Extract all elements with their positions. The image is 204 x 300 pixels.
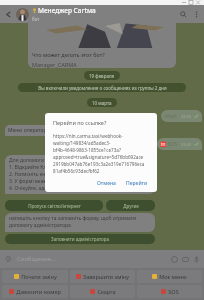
staticText: Перейти — [126, 180, 148, 187]
staticText: 🆘 SOS — [160, 141, 177, 148]
button[interactable]: Пропуск світло/інтернет — [5, 200, 103, 211]
staticText: 23:03 — [181, 142, 192, 147]
staticText: Для допомоги адміністратора: — [9, 157, 84, 164]
button[interactable]: Отмена — [94, 178, 119, 189]
staticText: 19 февраля — [89, 73, 115, 79]
staticText: Пропуск світло/інтернет — [28, 203, 81, 209]
button[interactable]: Voice message — [191, 254, 202, 265]
staticText: Перейти по ссылке? — [53, 119, 107, 126]
staticText: Моє меню — [159, 273, 187, 280]
button[interactable]: Моє меню — [137, 270, 202, 283]
staticText: Что может делать этот бот? — [32, 51, 105, 58]
button[interactable]: Почати зміну — [2, 270, 68, 283]
staticText: 1. Відкрийте Клуб водіїв — [9, 164, 68, 171]
staticText: Дзвонити номер — [16, 288, 61, 295]
button[interactable]: SOS — [137, 285, 202, 298]
staticText: напишіть кнопку та заповніть форму, щоб … — [9, 215, 151, 229]
staticText: Заповнити адміністратора — [51, 236, 109, 242]
staticText: Почати зміну — [21, 273, 57, 280]
staticText: Завершити зміну — [83, 273, 129, 280]
button[interactable]: Завершити зміну — [70, 270, 135, 283]
staticText: 2. Натисніть кнопку нижче — [9, 171, 74, 178]
button[interactable]: Другие — [106, 200, 155, 211]
staticText: Другие — [123, 203, 139, 209]
staticText: /start — [164, 113, 177, 120]
button[interactable]: Search — [176, 7, 190, 21]
staticText: 3. У формі вкажіть деталі — [9, 178, 70, 185]
button[interactable]: Перейти — [123, 178, 151, 189]
staticText: Менеджер Сагtма — [38, 6, 96, 15]
staticText: SOS — [168, 288, 179, 295]
staticText: 4. Очікуйте, адмін відповість — [9, 185, 79, 192]
staticText: 22:55 — [181, 114, 192, 119]
button[interactable]: Дзвонити номер — [2, 285, 68, 298]
staticText: Manager_CARMA — [32, 61, 77, 68]
staticText: Сообщение... — [17, 255, 56, 263]
staticText: Отмена — [97, 180, 116, 187]
button[interactable]: Bot commands — [180, 254, 191, 265]
button[interactable]: Attach — [3, 254, 14, 265]
staticText: бот — [32, 16, 40, 22]
staticText: Вы включили уведомления о сообщениях из … — [38, 85, 167, 91]
button[interactable]: Back — [2, 8, 15, 21]
button[interactable]: Stickers — [169, 254, 180, 265]
button[interactable]: More options — [190, 8, 202, 20]
staticText: https://nln.carma.taxi/webhook- waiting/… — [53, 133, 145, 174]
staticText: Скарга — [97, 288, 116, 295]
staticText: Меню оператора — [8, 127, 50, 134]
staticText: 10 марта — [92, 100, 112, 106]
button[interactable]: Скарга — [70, 285, 135, 298]
button[interactable]: Заповнити адміністратора — [5, 234, 155, 244]
